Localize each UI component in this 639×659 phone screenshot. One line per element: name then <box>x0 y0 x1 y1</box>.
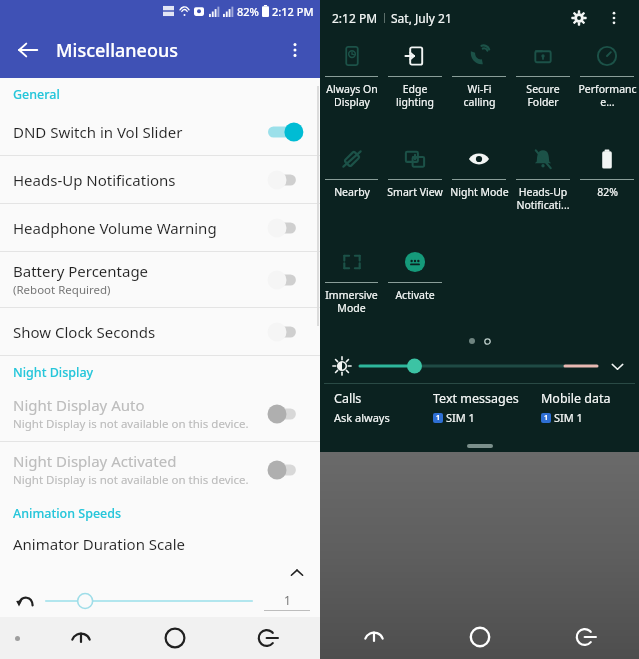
staticText: Night Mode <box>450 185 509 199</box>
staticText: Ask always <box>334 410 390 425</box>
staticText: Night Display <box>13 364 94 381</box>
staticText: Animator Duration Scale <box>13 534 185 554</box>
button[interactable]: Mobile data <box>541 390 639 425</box>
button[interactable]: Calls <box>334 390 433 425</box>
button[interactable]: Night Display Auto <box>0 386 320 441</box>
button[interactable]: Show Clock Seconds <box>0 308 320 355</box>
button[interactable]: Back <box>8 30 48 70</box>
staticText: Sat, July 21 <box>391 10 452 26</box>
staticText: SIM 1 <box>446 410 475 425</box>
staticText: Performanc e... <box>578 82 637 109</box>
button[interactable]: 82% <box>575 139 639 242</box>
button[interactable] <box>262 213 306 243</box>
button[interactable]: More options <box>601 5 627 31</box>
button[interactable]: Back <box>533 615 639 659</box>
button[interactable]: Night Mode <box>447 139 511 242</box>
staticText: Night Display is not available on this d… <box>13 472 249 488</box>
button[interactable]: Wi-Fi calling <box>447 36 511 139</box>
staticText: Edge lighting <box>396 82 434 109</box>
button[interactable]: Home <box>128 617 221 659</box>
button[interactable] <box>44 586 254 616</box>
staticText: 82% <box>597 185 618 199</box>
button[interactable]: Night Display Activated <box>0 442 320 497</box>
button[interactable]: Recents <box>320 615 427 659</box>
button[interactable]: Secure Folder <box>511 36 575 139</box>
staticText: Immersive Mode <box>325 288 378 315</box>
button[interactable]: Always On Display <box>320 36 383 139</box>
button[interactable]: Performanc e... <box>575 36 639 139</box>
button[interactable]: Home <box>427 615 533 659</box>
staticText: Calls <box>334 390 362 407</box>
button[interactable] <box>262 455 306 485</box>
staticText: Nearby <box>334 185 370 199</box>
button[interactable]: Recents <box>34 617 128 659</box>
staticText: Heads-Up Notificati... <box>516 185 570 212</box>
button[interactable]: Activate <box>383 242 447 316</box>
button[interactable]: Collapse <box>286 562 308 584</box>
staticText: 2:12 PM <box>332 10 378 26</box>
button[interactable] <box>360 353 597 379</box>
button[interactable]: Edge lighting <box>383 36 447 139</box>
button[interactable]: Headphone Volume Warning <box>0 204 320 251</box>
button[interactable] <box>262 317 306 347</box>
button[interactable]: Expand <box>605 354 629 378</box>
staticText: 1 <box>436 413 441 423</box>
staticText: Night Display Auto <box>13 395 145 415</box>
button[interactable]: Auto brightness <box>330 354 354 378</box>
staticText: Heads-Up Notifications <box>13 170 176 190</box>
button[interactable]: Heads-Up Notificati... <box>511 139 575 242</box>
button[interactable]: Battery Percentage <box>0 252 320 307</box>
staticText: Smart View <box>387 185 443 199</box>
staticText: Mobile data <box>541 390 611 407</box>
staticText: Secure Folder <box>526 82 560 109</box>
staticText: Always On Display <box>326 82 378 109</box>
staticText: (Reboot Required) <box>13 282 111 298</box>
staticText: DND Switch in Vol Slider <box>13 122 183 142</box>
staticText: 1 <box>544 413 549 423</box>
button[interactable]: DND Switch in Vol Slider <box>0 108 320 155</box>
staticText: 82% <box>237 4 259 19</box>
button[interactable]: Back <box>221 617 314 659</box>
staticText: Battery Percentage <box>13 261 149 281</box>
button[interactable]: Immersive Mode <box>320 242 383 316</box>
button[interactable]: More options <box>276 31 314 69</box>
staticText: 2:12 PM <box>272 4 314 19</box>
staticText: SIM 1 <box>554 410 583 425</box>
staticText: Night Display Activated <box>13 451 177 471</box>
button[interactable] <box>262 165 306 195</box>
button[interactable]: Settings <box>565 4 593 32</box>
staticText: Wi-Fi calling <box>463 82 496 109</box>
button[interactable]: Collapse panel <box>467 444 493 448</box>
staticText: Show Clock Seconds <box>13 322 156 342</box>
button[interactable]: Nearby <box>320 139 383 242</box>
button[interactable] <box>262 265 306 295</box>
button[interactable]: Heads-Up Notifications <box>0 156 320 203</box>
staticText: Activate <box>395 288 435 302</box>
button[interactable]: Animator Duration Scale <box>0 527 320 561</box>
button[interactable]: Text messages <box>433 390 541 425</box>
staticText: Miscellaneous <box>56 38 178 63</box>
button[interactable]: Reset <box>10 586 40 616</box>
button[interactable] <box>262 117 306 147</box>
button[interactable]: Smart View <box>383 139 447 242</box>
staticText: Headphone Volume Warning <box>13 218 217 238</box>
button[interactable] <box>262 399 306 429</box>
staticText: Text messages <box>433 390 519 407</box>
staticText: 1 <box>284 592 291 608</box>
staticText: General <box>13 86 60 103</box>
staticText: Animation Speeds <box>13 505 122 522</box>
staticText: Night Display is not available on this d… <box>13 416 249 432</box>
